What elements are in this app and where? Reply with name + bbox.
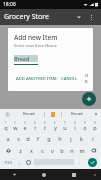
staticText: o bbox=[83, 124, 87, 131]
button[interactable]: 4 bbox=[30, 120, 40, 132]
staticText: OK bbox=[85, 73, 86, 85]
staticText: ! bbox=[7, 113, 8, 117]
staticText: 7 bbox=[64, 121, 66, 125]
staticText: m bbox=[79, 147, 85, 154]
staticText: w bbox=[13, 124, 18, 131]
button[interactable]: 6 bbox=[50, 120, 60, 132]
button[interactable]: x bbox=[26, 144, 37, 156]
button[interactable]: Hide keyboard bbox=[89, 169, 101, 180]
button[interactable]: l bbox=[87, 132, 98, 144]
button[interactable]: d bbox=[23, 132, 33, 144]
staticText: l bbox=[92, 135, 94, 142]
staticText: 18:06 bbox=[3, 1, 16, 8]
button[interactable]: s bbox=[13, 132, 23, 144]
staticText: i bbox=[74, 124, 76, 131]
staticText: s bbox=[17, 135, 20, 142]
staticText: . bbox=[79, 159, 81, 166]
staticText: 9 bbox=[84, 121, 86, 125]
staticText: Grocery Store bbox=[4, 12, 49, 22]
button[interactable]: Shift bbox=[1, 144, 15, 156]
button[interactable]: g bbox=[43, 132, 54, 144]
button[interactable]: Clipboard bbox=[45, 109, 61, 119]
button[interactable]: Select list bbox=[73, 11, 85, 23]
staticText: Enter new Item Name bbox=[14, 43, 57, 49]
button[interactable]: a bbox=[3, 132, 13, 144]
button[interactable]: c bbox=[37, 144, 47, 156]
staticText: 1 bbox=[5, 121, 7, 125]
staticText: d bbox=[26, 135, 30, 142]
staticText: g bbox=[47, 135, 51, 142]
staticText: 0 bbox=[94, 121, 96, 125]
button[interactable]: More options bbox=[85, 11, 97, 23]
button[interactable]: 3 bbox=[20, 120, 30, 132]
button[interactable]: Expand suggestions bbox=[91, 109, 101, 119]
button[interactable]: m bbox=[77, 144, 87, 156]
staticText: Bread bbox=[71, 111, 83, 117]
button[interactable]: b bbox=[57, 144, 67, 156]
staticText: c bbox=[41, 147, 44, 154]
button[interactable]: Home bbox=[29, 169, 59, 180]
button[interactable]: Period bbox=[75, 156, 84, 168]
button[interactable]: Add item bbox=[82, 92, 96, 106]
staticText: ADD ANOTHER ITEM bbox=[16, 76, 57, 82]
staticText: j bbox=[70, 135, 72, 142]
staticText: v bbox=[51, 147, 54, 154]
staticText: y bbox=[54, 124, 57, 131]
staticText: r bbox=[34, 124, 37, 131]
staticText: p bbox=[93, 124, 97, 131]
button[interactable]: 0 bbox=[90, 120, 100, 132]
staticText: f bbox=[37, 135, 39, 142]
button[interactable]: k bbox=[76, 132, 87, 144]
staticText: Bread bbox=[23, 111, 35, 117]
button[interactable]: Voice input bbox=[0, 109, 14, 119]
staticText: , bbox=[19, 159, 21, 166]
button[interactable]: v bbox=[47, 144, 57, 156]
button[interactable]: Comma bbox=[15, 156, 24, 168]
staticText: q bbox=[4, 124, 8, 131]
button[interactable]: Enter bbox=[84, 156, 100, 168]
staticText: a bbox=[6, 135, 10, 142]
button[interactable]: OK bbox=[83, 71, 88, 87]
staticText: u bbox=[63, 124, 67, 131]
button[interactable]: 7 bbox=[60, 120, 70, 132]
button[interactable]: z bbox=[15, 144, 26, 156]
staticText: n bbox=[70, 147, 74, 154]
staticText: z bbox=[19, 147, 22, 154]
button[interactable]: Emoji bbox=[24, 156, 33, 168]
button[interactable]: 9 bbox=[80, 120, 90, 132]
staticText: e bbox=[23, 124, 27, 131]
button[interactable]: Bread bbox=[14, 109, 44, 119]
staticText: 2 bbox=[14, 121, 16, 125]
button[interactable]: 8 bbox=[70, 120, 80, 132]
button[interactable]: 2 bbox=[10, 120, 20, 132]
staticText: 4 bbox=[34, 121, 36, 125]
button[interactable]: ?123 bbox=[1, 156, 15, 168]
button[interactable]: Back bbox=[0, 169, 29, 180]
staticText: 5 bbox=[44, 121, 46, 125]
button[interactable]: j bbox=[65, 132, 76, 144]
staticText: 3 bbox=[24, 121, 26, 125]
button[interactable]: ADD ANOTHER ITEM bbox=[14, 74, 59, 84]
staticText: k bbox=[80, 135, 83, 142]
staticText: CANCEL bbox=[61, 76, 77, 82]
staticText: 6 bbox=[54, 121, 56, 125]
button[interactable]: h bbox=[54, 132, 65, 144]
staticText: b bbox=[60, 147, 64, 154]
staticText: 8 bbox=[74, 121, 76, 125]
button[interactable]: Backspace bbox=[87, 144, 100, 156]
button[interactable]: 5 bbox=[40, 120, 50, 132]
button[interactable]: Bread bbox=[62, 109, 91, 119]
staticText: h bbox=[58, 135, 62, 142]
button[interactable]: CANCEL bbox=[59, 74, 79, 84]
button[interactable]: Recent apps bbox=[59, 169, 89, 180]
staticText: t bbox=[44, 124, 46, 131]
staticText: Bread bbox=[14, 55, 30, 62]
button[interactable]: 1 bbox=[1, 120, 10, 132]
button[interactable]: f bbox=[33, 132, 43, 144]
staticText: Add new Item bbox=[14, 33, 58, 42]
staticText: x bbox=[30, 147, 33, 154]
button[interactable]: n bbox=[67, 144, 77, 156]
staticText: ?123 bbox=[4, 160, 12, 165]
